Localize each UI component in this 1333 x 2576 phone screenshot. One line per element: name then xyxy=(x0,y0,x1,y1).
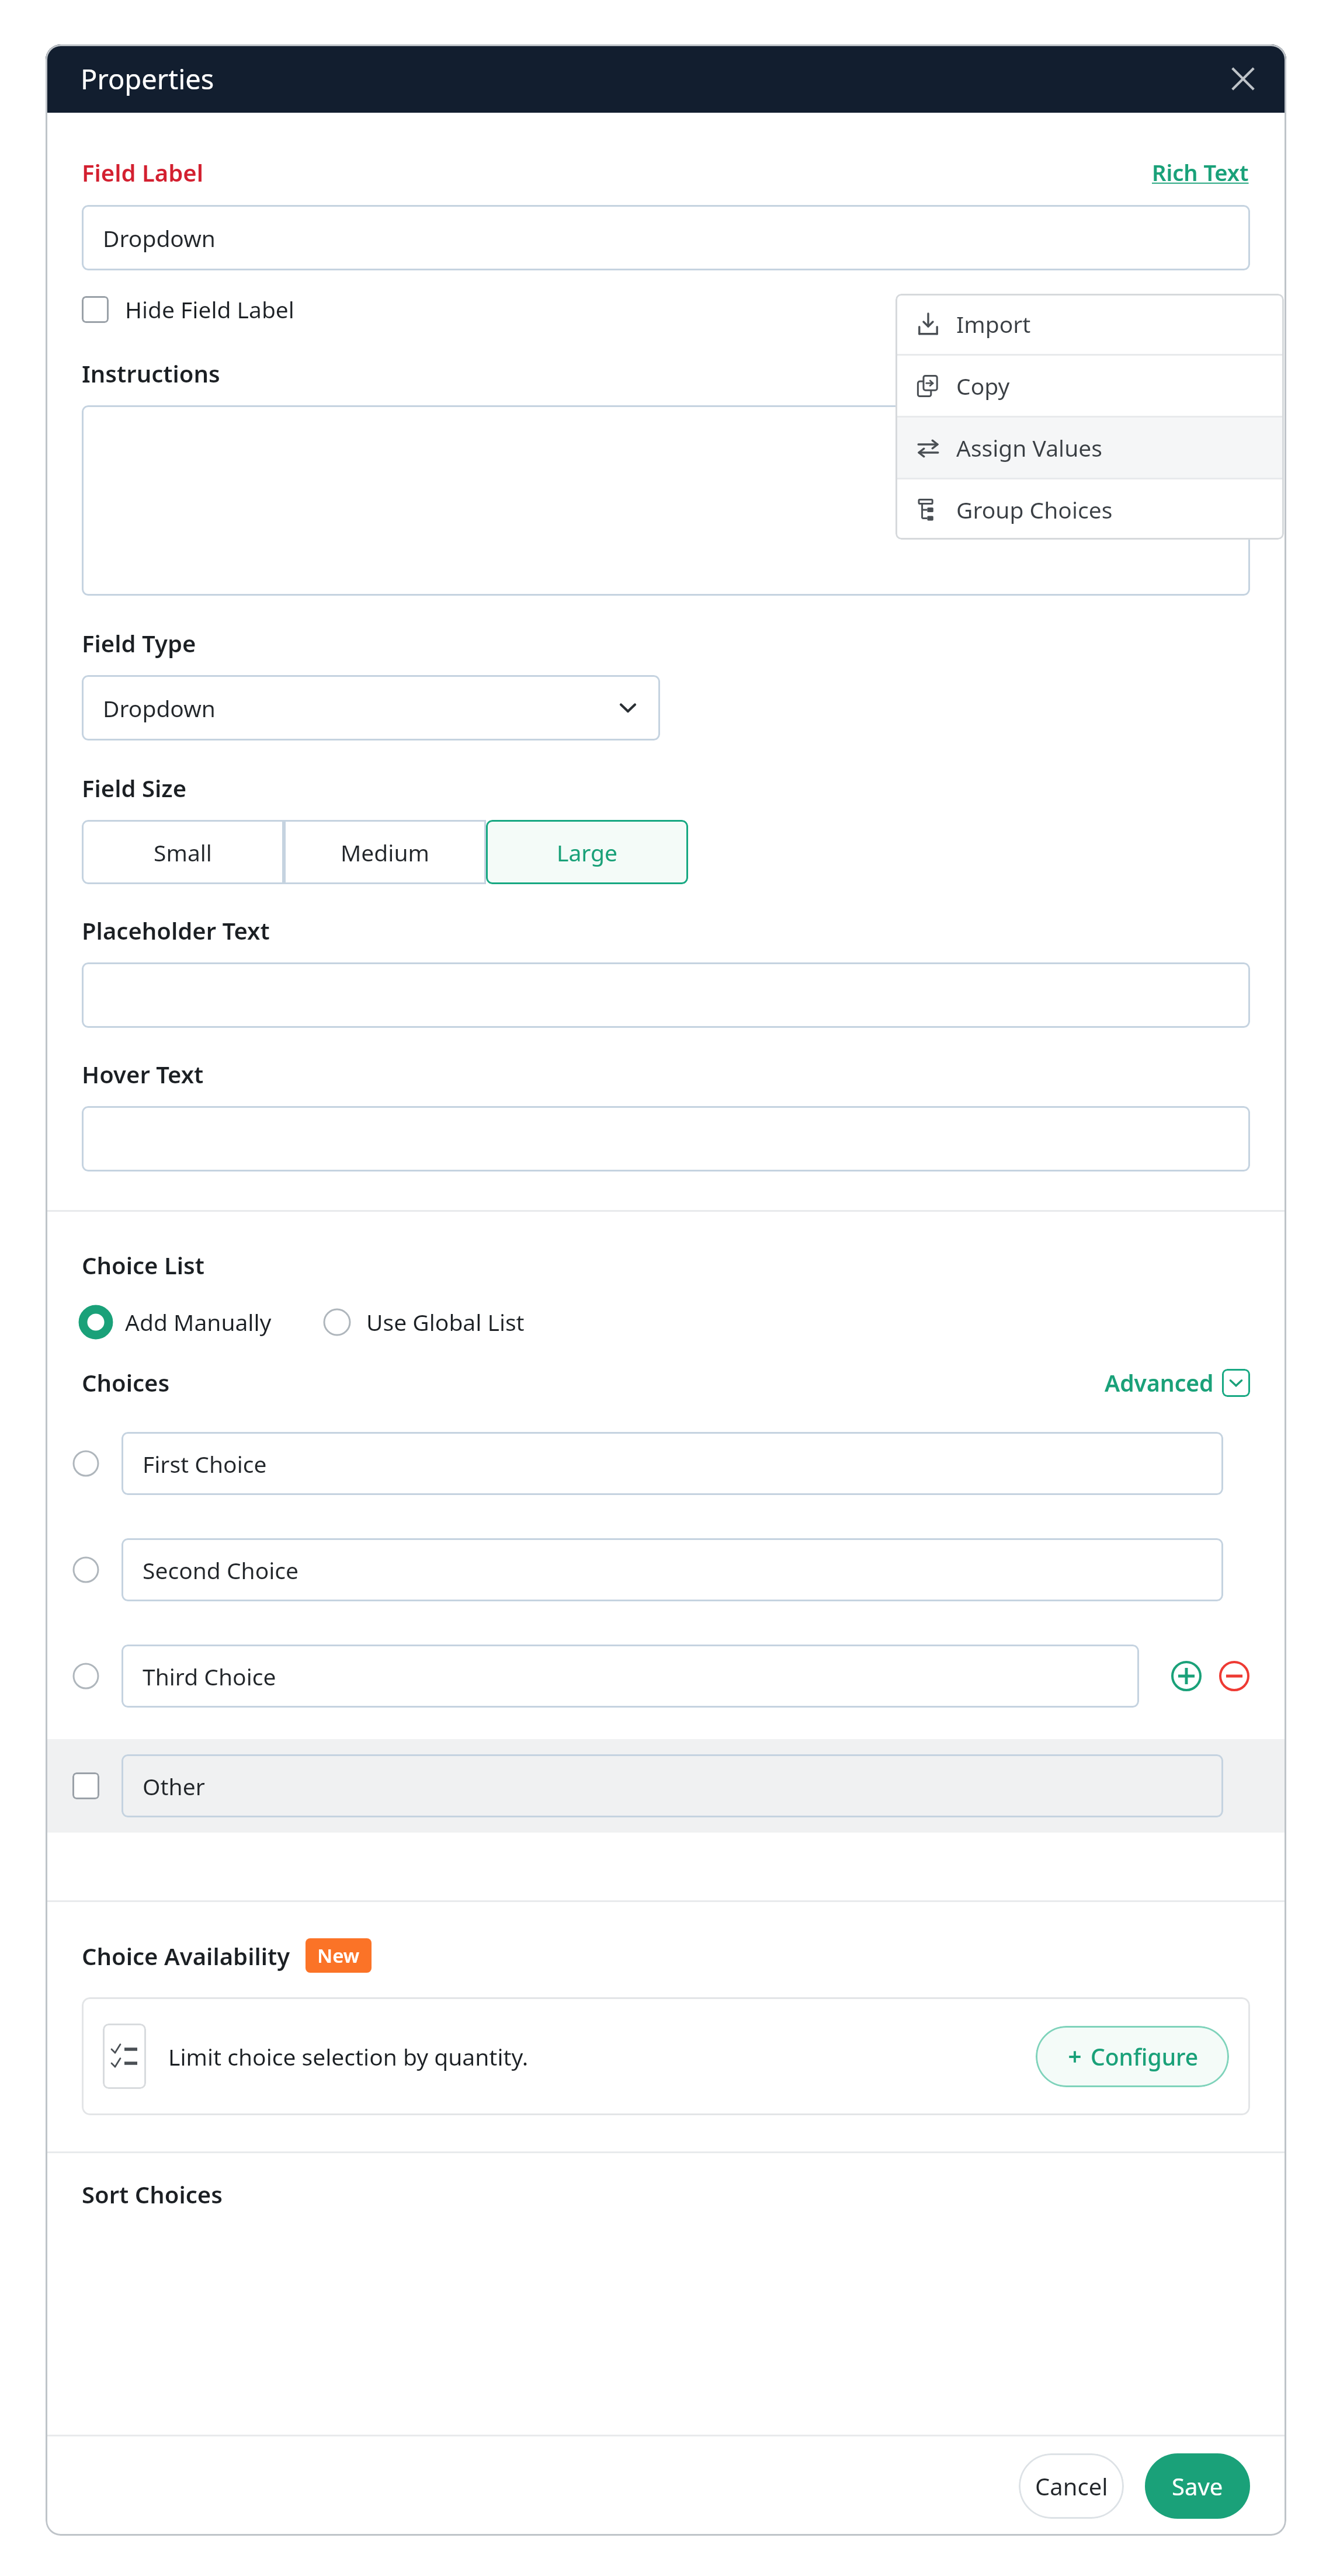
staticText: Advanced xyxy=(1105,1367,1214,1398)
button[interactable]: Third Choice xyxy=(122,1645,1139,1708)
staticText: Field Type xyxy=(82,627,196,659)
staticText: Instructions xyxy=(82,357,220,389)
button[interactable]: Dropdown xyxy=(82,205,1250,270)
button[interactable]: Import xyxy=(895,294,1284,354)
staticText: Import xyxy=(956,308,1031,339)
button[interactable]: Cancel xyxy=(1019,2453,1124,2519)
staticText: Assign Values xyxy=(956,432,1102,463)
staticText: Large xyxy=(557,837,618,868)
staticText: Dropdown xyxy=(103,693,216,724)
staticText: Group Choices xyxy=(956,494,1113,525)
button[interactable]: Second Choice xyxy=(122,1538,1223,1601)
button[interactable]: Dropdown xyxy=(82,675,660,741)
staticText: Hide Field Label xyxy=(125,294,294,325)
button[interactable]: Save xyxy=(1145,2453,1250,2519)
staticText: Add Manually xyxy=(125,1306,272,1337)
button[interactable]: Close xyxy=(1222,58,1264,100)
staticText: Placeholder Text xyxy=(82,915,270,946)
button[interactable]: Add Manually xyxy=(82,1304,272,1340)
button[interactable]: Use Global List xyxy=(323,1304,525,1340)
button[interactable]: Configure xyxy=(1036,2026,1229,2087)
staticText: Configure xyxy=(1091,2041,1199,2072)
button[interactable]: Small xyxy=(82,820,284,884)
button[interactable]: Large xyxy=(486,820,688,884)
staticText: Sort Choices xyxy=(82,2178,223,2210)
staticText: First Choice xyxy=(143,1448,267,1479)
staticText: Choices xyxy=(82,1367,170,1398)
button[interactable]: Medium xyxy=(284,820,486,884)
staticText: Limit choice selection by quantity. xyxy=(168,2041,529,2072)
staticText: Field Size xyxy=(82,772,187,804)
staticText: Use Global List xyxy=(366,1306,525,1337)
button[interactable]: Remove choice xyxy=(1219,1659,1250,1693)
staticText: Second Choice xyxy=(143,1555,299,1586)
button[interactable]: Advanced xyxy=(1105,1367,1250,1398)
button[interactable] xyxy=(82,1106,1250,1171)
staticText: Cancel xyxy=(1035,2470,1108,2502)
staticText: Save xyxy=(1172,2470,1223,2502)
staticText: Copy xyxy=(956,370,1010,401)
staticText: New xyxy=(317,1942,360,1969)
staticText: Hover Text xyxy=(82,1058,204,1090)
staticText: Choice Availability xyxy=(82,1940,290,1972)
button[interactable]: Rich Text xyxy=(1151,156,1250,189)
button[interactable] xyxy=(82,962,1250,1028)
button[interactable]: Group Choices xyxy=(895,479,1284,540)
staticText: Third Choice xyxy=(143,1661,276,1692)
staticText: Dropdown xyxy=(103,223,216,253)
staticText: Rich Text xyxy=(1152,157,1249,187)
button[interactable] xyxy=(82,405,1250,596)
button[interactable]: Add choice xyxy=(1169,1659,1203,1693)
staticText: Properties xyxy=(81,60,214,98)
button[interactable]: First Choice xyxy=(122,1432,1223,1495)
staticText: Small xyxy=(154,837,212,868)
staticText: Medium xyxy=(341,837,429,868)
button[interactable]: Assign Values xyxy=(895,418,1284,478)
button[interactable]: Hide Field Label xyxy=(82,290,294,328)
button[interactable]: Copy xyxy=(895,356,1284,416)
staticText: Choice List xyxy=(82,1249,205,1281)
staticText: Other xyxy=(143,1771,205,1802)
staticText: Field Label xyxy=(82,157,203,188)
